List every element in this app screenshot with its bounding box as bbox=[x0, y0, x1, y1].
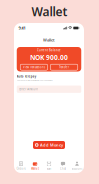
staticText: Wallet bbox=[31, 3, 67, 19]
staticText: Add Money bbox=[40, 142, 63, 148]
staticText: You can secure technologies for source a… bbox=[17, 80, 53, 81]
button[interactable]: Account bbox=[70, 157, 84, 173]
button[interactable]: Orders bbox=[14, 157, 28, 173]
button[interactable]: View Transactions bbox=[20, 64, 48, 70]
button[interactable]: Add Money bbox=[33, 141, 65, 149]
button[interactable]: Chat bbox=[56, 157, 70, 173]
staticText: Enter Amount bbox=[19, 87, 38, 91]
staticText: Orders bbox=[16, 167, 25, 170]
staticText: Wallet bbox=[31, 167, 39, 170]
staticText: NOK 900.00 bbox=[30, 53, 68, 62]
button[interactable]: Wallet bbox=[28, 157, 42, 173]
button[interactable]: Scan bbox=[42, 157, 56, 173]
staticText: View Transactions bbox=[23, 65, 45, 69]
staticText: 9:41 bbox=[18, 25, 25, 31]
staticText: Chat bbox=[60, 167, 66, 170]
staticText: Auto Telepay bbox=[17, 75, 36, 78]
staticText: Account bbox=[71, 167, 82, 170]
staticText: Wallet bbox=[43, 37, 55, 43]
staticText: Scan bbox=[46, 167, 51, 170]
staticText: Current Balance bbox=[37, 48, 61, 52]
staticText: Transfer bbox=[59, 65, 69, 69]
button[interactable]: Transfer bbox=[50, 64, 78, 70]
